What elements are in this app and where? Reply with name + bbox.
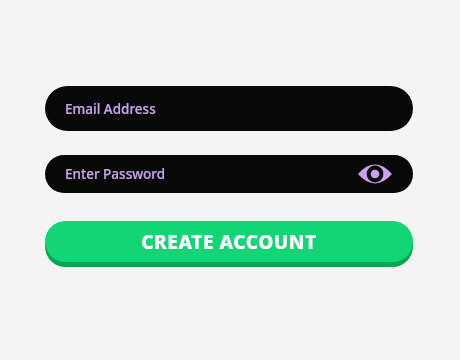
button[interactable]: CREATE ACCOUNT [45, 221, 413, 267]
button[interactable]: Enter Password [45, 155, 413, 193]
button[interactable]: Show password [357, 162, 393, 186]
staticText: Enter Password [65, 165, 166, 183]
staticText: Email Address [65, 100, 156, 118]
button[interactable]: Email Address [45, 86, 413, 131]
staticText: CREATE ACCOUNT [141, 229, 317, 255]
